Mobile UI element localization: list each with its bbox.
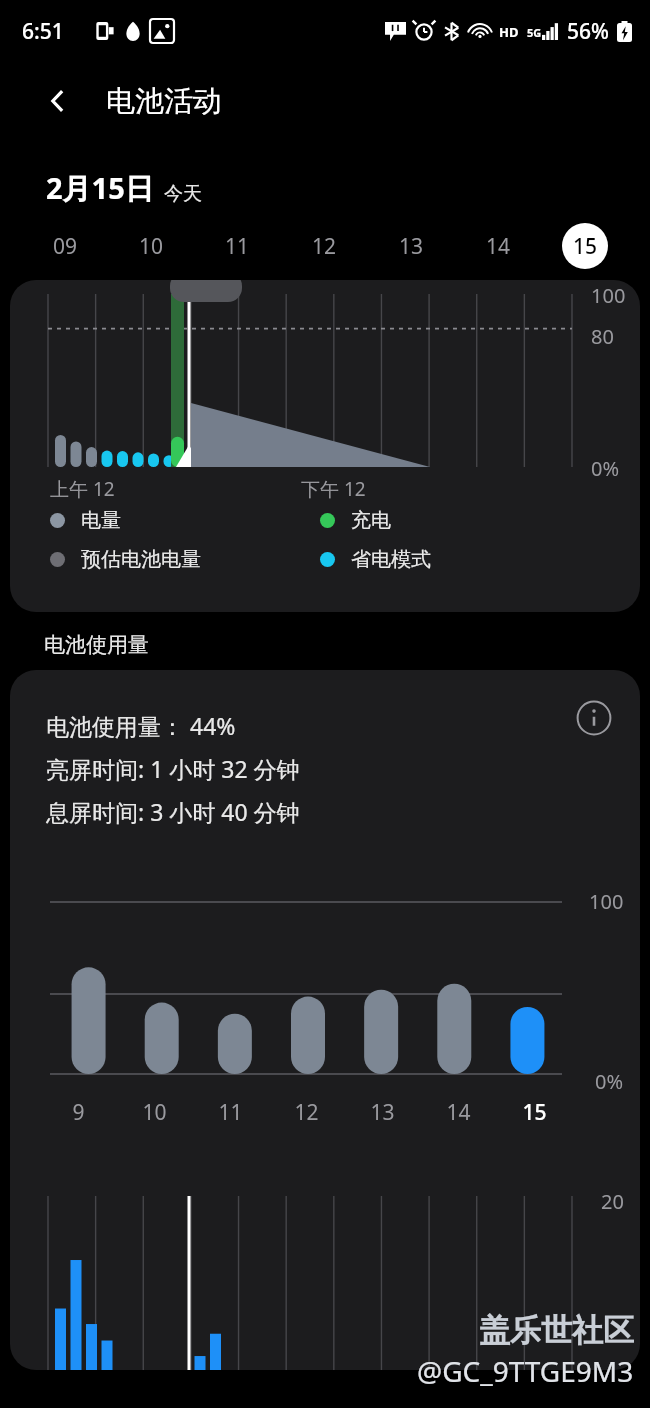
staticText: HD	[499, 23, 519, 41]
staticText: 15	[522, 1098, 547, 1127]
staticText: 9	[72, 1098, 85, 1127]
staticText: 10	[142, 1098, 167, 1127]
staticText: 13	[399, 232, 424, 261]
staticText: 省电模式	[351, 547, 431, 572]
button[interactable]: 12	[280, 222, 367, 270]
staticText: 电量	[81, 508, 121, 533]
staticText: 100	[591, 282, 626, 309]
staticText: 100	[589, 888, 624, 915]
staticText: 充电	[351, 508, 391, 533]
button[interactable]: 11	[194, 222, 280, 270]
staticText: 盖乐世社区	[479, 1311, 634, 1350]
staticText: 12	[294, 1098, 319, 1127]
staticText: @GC_9TTGE9M3	[417, 1352, 634, 1390]
button[interactable]: Information	[572, 696, 616, 740]
staticText: 上午 12	[50, 476, 115, 502]
button[interactable]: Back	[30, 73, 86, 129]
staticText: 息屏时间: 3 小时 40 分钟	[46, 796, 300, 827]
staticText: 电池使用量： 44%	[46, 710, 236, 741]
button[interactable]: 13	[367, 222, 454, 270]
button[interactable]: 15	[541, 222, 628, 270]
button[interactable]: 100	[10, 280, 640, 612]
staticText: 今天	[164, 182, 202, 206]
staticText: 0%	[591, 455, 620, 482]
staticText: 14	[446, 1098, 471, 1127]
staticText: 80	[591, 323, 614, 350]
staticText: 12	[312, 232, 337, 261]
staticText: 亮屏时间: 1 小时 32 分钟	[46, 753, 300, 784]
staticText: 电池使用量	[44, 632, 149, 658]
staticText: 11	[225, 232, 250, 261]
staticText: 电池活动	[106, 83, 222, 120]
staticText: 13	[370, 1098, 395, 1127]
staticText: 11	[218, 1098, 243, 1127]
staticText: 下午 12	[301, 476, 366, 502]
staticText: 14	[486, 232, 511, 261]
button[interactable]: 电池使用量： 44%	[10, 670, 640, 1370]
button[interactable]: 10	[108, 222, 194, 270]
staticText: 15	[573, 232, 598, 261]
staticText: 5G	[527, 25, 542, 40]
staticText: 6:51	[22, 17, 64, 46]
staticText: 10	[139, 232, 164, 261]
staticText: 56%	[567, 17, 609, 46]
staticText: 20	[601, 1188, 624, 1215]
button[interactable]: 14	[454, 222, 541, 270]
staticText: 预估电池电量	[81, 547, 201, 572]
staticText: 0%	[595, 1068, 624, 1095]
button[interactable]: 09	[22, 222, 108, 270]
staticText: 09	[53, 232, 78, 261]
staticText: 2月15日	[46, 168, 154, 208]
